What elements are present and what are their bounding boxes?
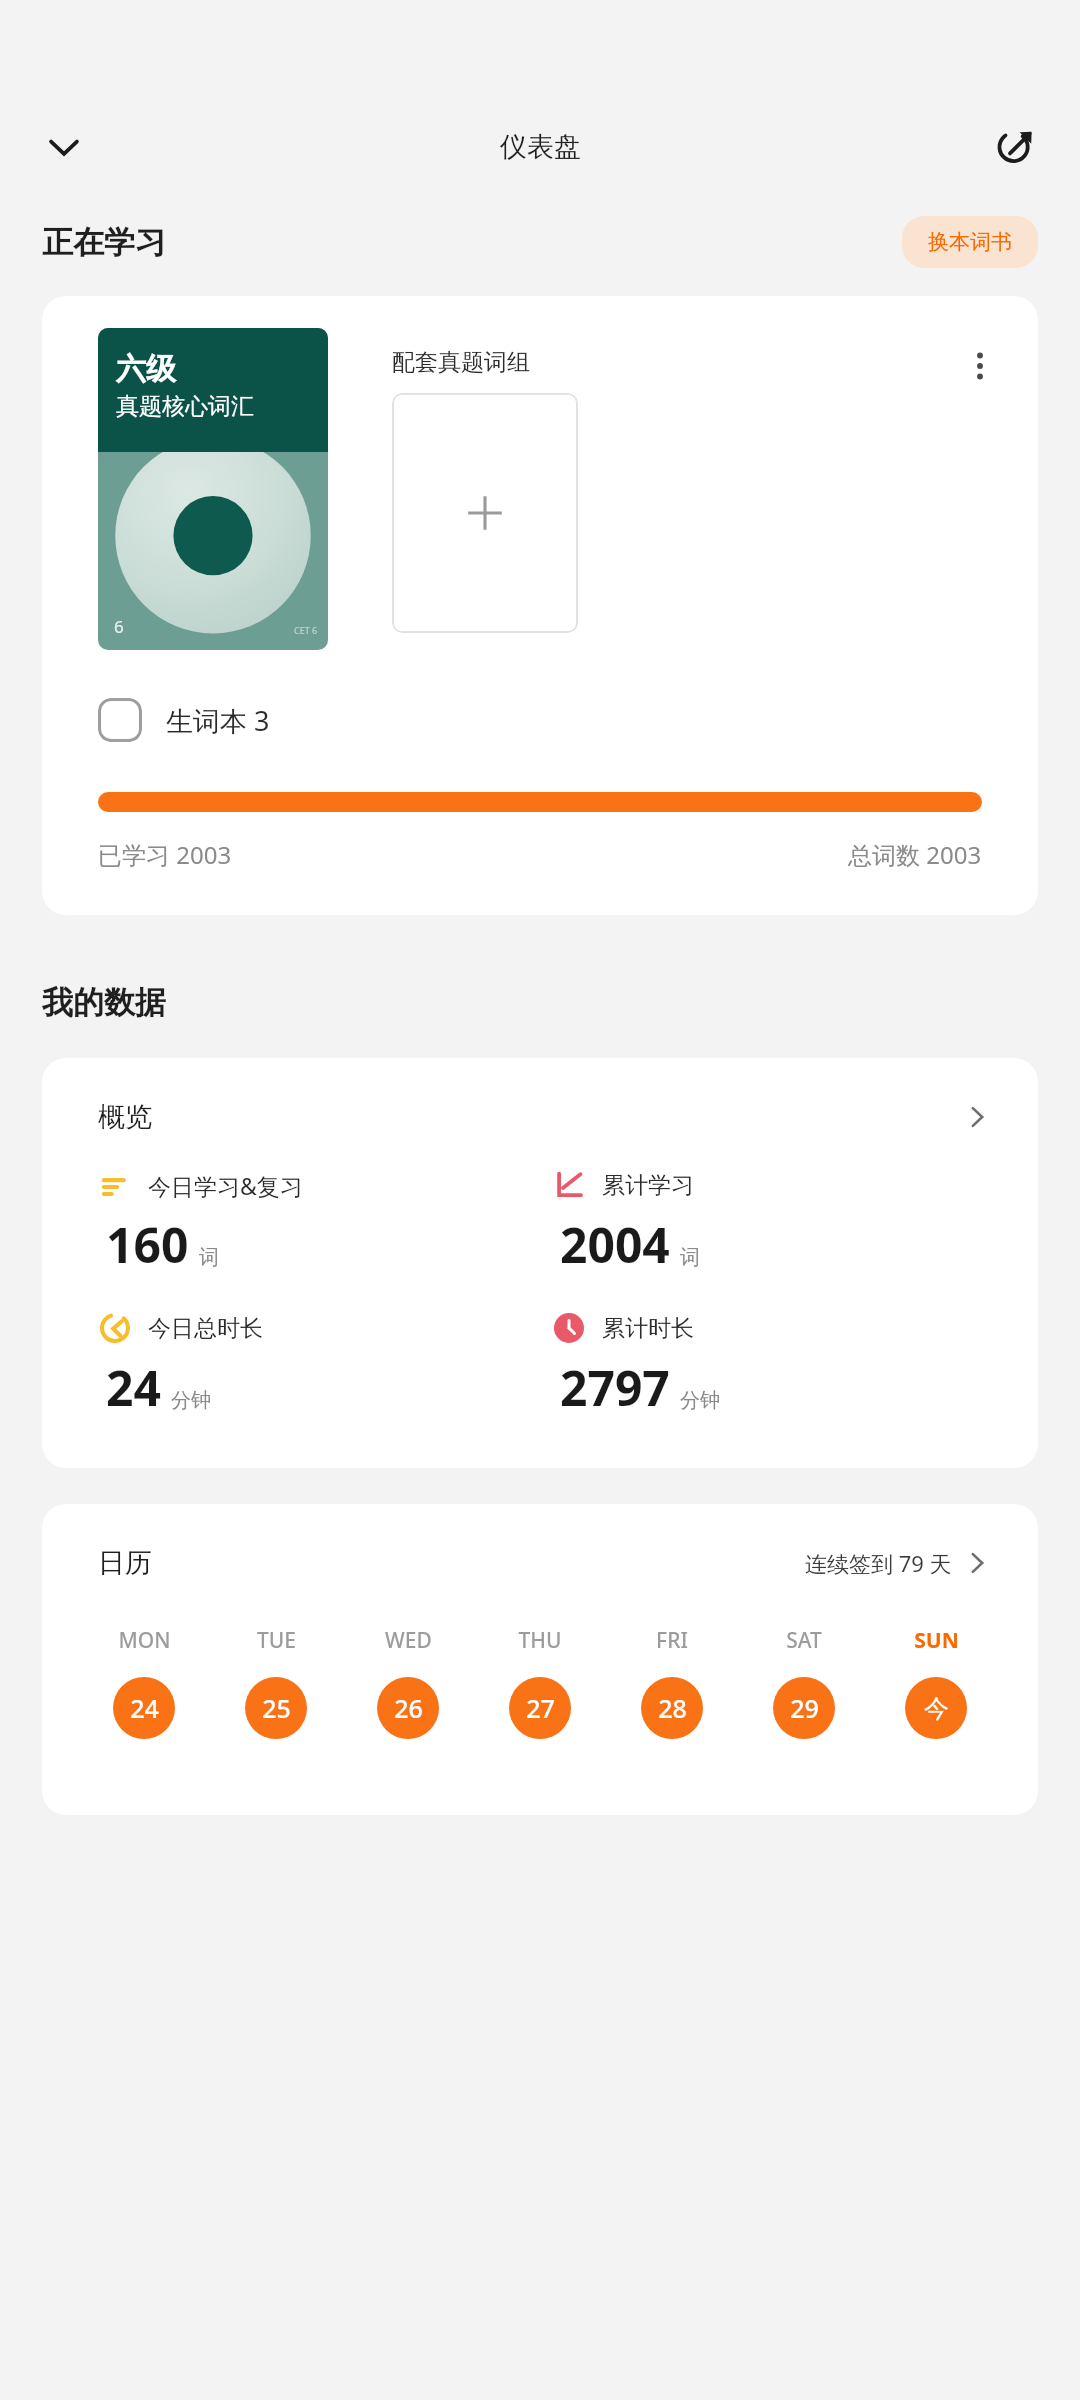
button[interactable]: Share <box>988 119 1044 175</box>
staticText: 今 <box>924 1693 949 1724</box>
button[interactable]: Collapse <box>36 119 92 175</box>
button[interactable]: 生词本 3 <box>42 690 1038 750</box>
staticText: SUN <box>914 1626 959 1655</box>
button[interactable]: 概览 <box>42 1096 1038 1138</box>
staticText: 换本词书 <box>928 229 1012 255</box>
button[interactable]: 28 <box>641 1677 703 1739</box>
button[interactable]: 24 <box>113 1677 175 1739</box>
staticText: 6 <box>114 615 124 638</box>
staticText: 连续签到 79 天 <box>805 1548 952 1578</box>
button[interactable]: More options <box>952 338 1008 394</box>
staticText: 日历 <box>98 1546 152 1580</box>
staticText: 29 <box>790 1691 819 1725</box>
staticText: 160 <box>106 1212 189 1277</box>
button[interactable]: Add word group <box>392 393 578 633</box>
staticText: THU <box>518 1626 562 1655</box>
staticText: 概览 <box>98 1100 152 1134</box>
staticText: 今日总时长 <box>148 1314 263 1343</box>
button[interactable]: 换本词书 <box>902 216 1038 268</box>
staticText: WED <box>385 1626 432 1655</box>
staticText: 25 <box>262 1691 291 1725</box>
staticText: 词 <box>680 1245 700 1270</box>
button[interactable]: 25 <box>245 1677 307 1739</box>
staticText: 27 <box>526 1691 555 1725</box>
button[interactable]: 今 <box>905 1677 967 1739</box>
button[interactable]: 29 <box>773 1677 835 1739</box>
staticText: 已学习 2003 <box>98 838 232 871</box>
staticText: 真题核心词汇 <box>116 392 254 421</box>
staticText: 分钟 <box>171 1388 211 1413</box>
staticText: 24 <box>106 1355 161 1420</box>
button[interactable]: 六级真题核心词汇 <box>98 328 328 650</box>
staticText: 2004 <box>560 1212 670 1277</box>
staticText: 生词本 3 <box>166 702 270 739</box>
staticText: FRI <box>656 1626 688 1655</box>
staticText: SAT <box>786 1626 822 1655</box>
staticText: CET 6 <box>294 624 318 636</box>
staticText: 仪表盘 <box>500 130 581 164</box>
staticText: 今日学习&复习 <box>148 1170 303 1201</box>
staticText: 累计时长 <box>602 1314 694 1343</box>
button[interactable]: 27 <box>509 1677 571 1739</box>
staticText: MON <box>118 1626 171 1655</box>
staticText: 26 <box>394 1691 423 1725</box>
staticText: 累计学习 <box>602 1171 694 1200</box>
staticText: 配套真题词组 <box>392 348 530 377</box>
staticText: 总词数 2003 <box>848 838 982 871</box>
button[interactable]: 26 <box>377 1677 439 1739</box>
staticText: 2797 <box>560 1355 670 1420</box>
staticText: 我的数据 <box>42 983 166 1022</box>
button[interactable]: 日历 <box>42 1542 1038 1584</box>
staticText: 六级 <box>116 350 176 388</box>
staticText: TUE <box>257 1626 296 1655</box>
staticText: 28 <box>658 1691 687 1725</box>
button[interactable]: 六级真题核心词汇 <box>42 296 1038 915</box>
staticText: 分钟 <box>680 1388 720 1413</box>
staticText: 正在学习 <box>42 223 166 262</box>
staticText: 词 <box>199 1245 219 1270</box>
staticText: 24 <box>130 1691 159 1725</box>
